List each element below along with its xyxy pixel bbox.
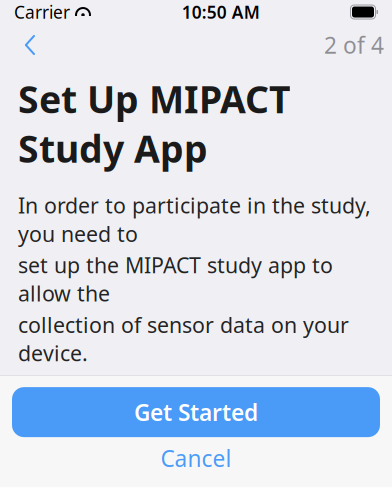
- staticText: 2 of 4: [324, 30, 384, 60]
- staticText: [70, 0, 75, 23]
- staticText: In order to participate in the study, yo…: [18, 191, 371, 248]
- staticText: collection of sensor data on your device…: [18, 310, 349, 367]
- button[interactable]: Back: [8, 25, 52, 65]
- staticText: Set Up MIPACT Study App: [18, 74, 291, 173]
- staticText: Get Started: [134, 397, 258, 427]
- button[interactable]: Cancel: [12, 437, 380, 479]
- button[interactable]: Get Started: [12, 387, 380, 437]
- staticText: Cancel: [160, 443, 231, 473]
- staticText: set up the MIPACT study app to allow the: [18, 251, 333, 307]
- staticText: Carrier: [14, 0, 70, 23]
- staticText: 10:50 AM: [182, 0, 260, 23]
